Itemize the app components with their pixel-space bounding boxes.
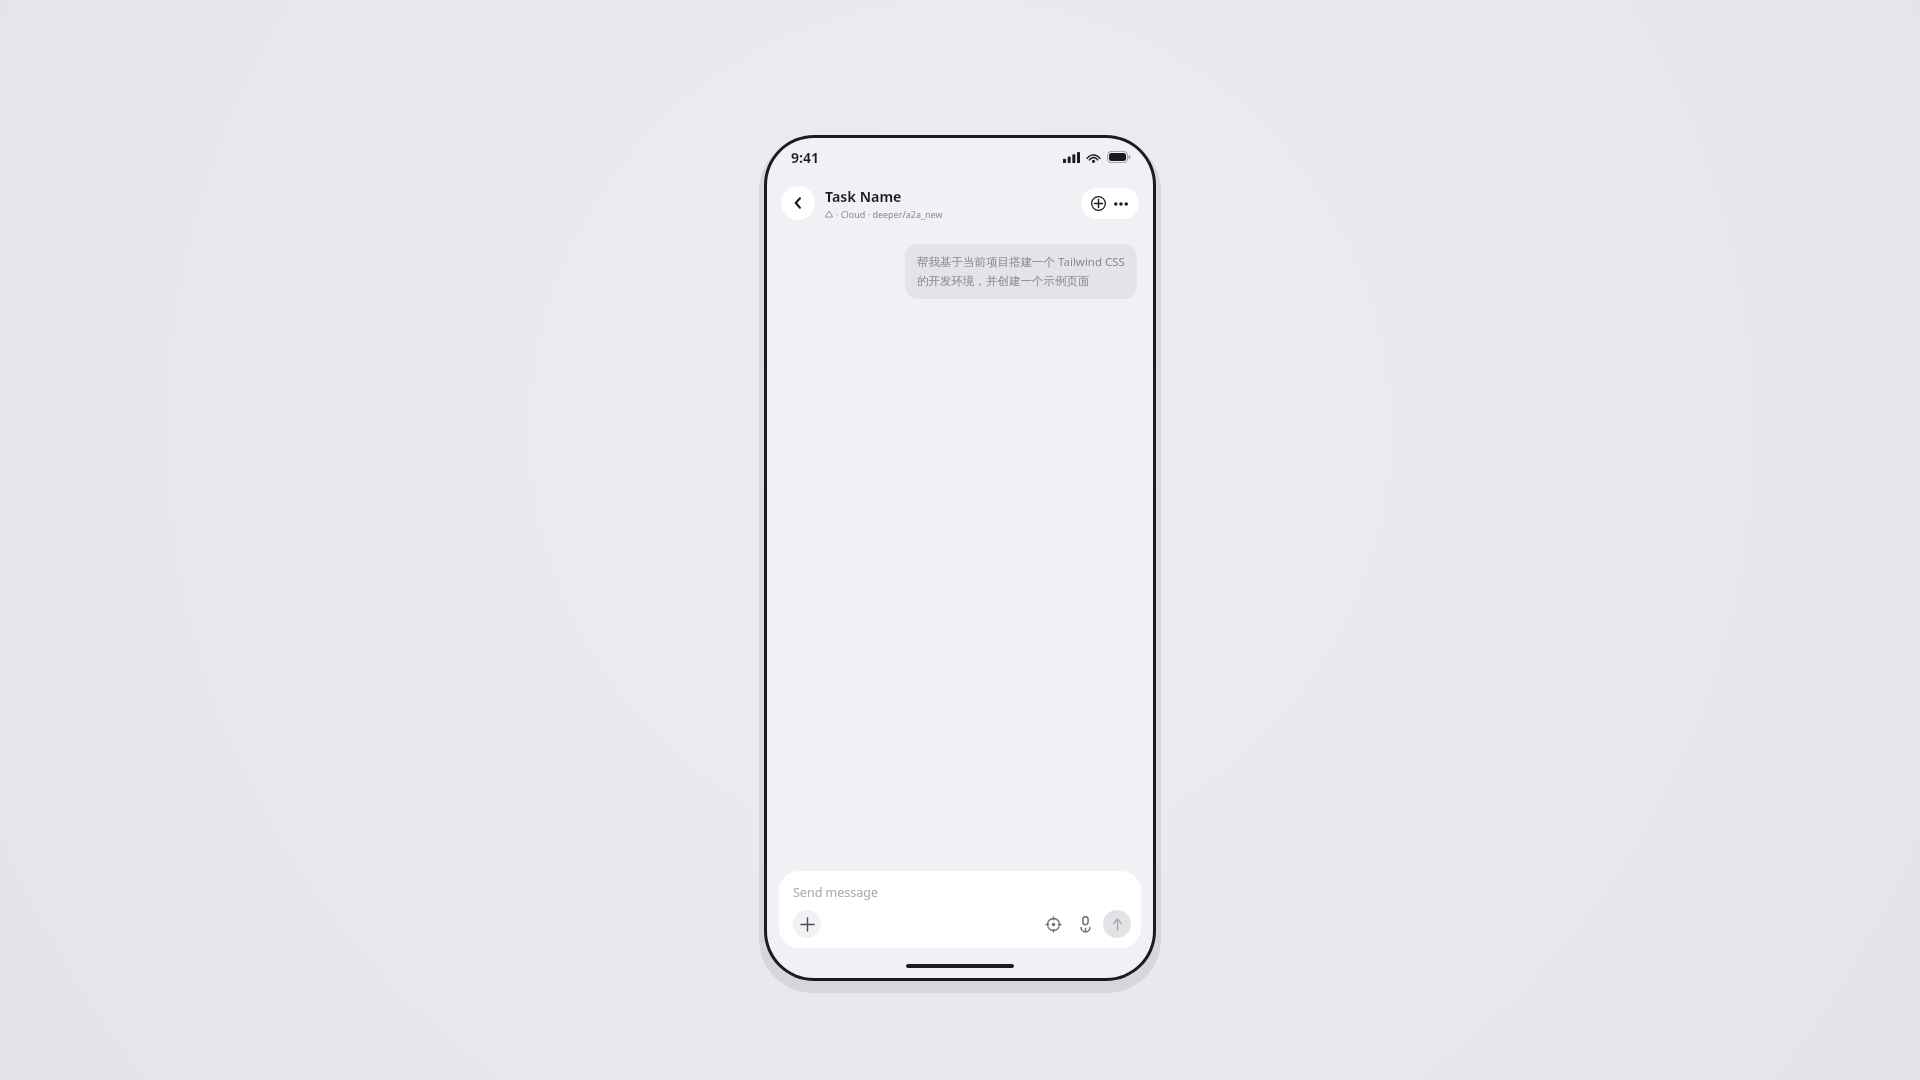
button[interactable]: Voice input: [1072, 911, 1098, 937]
button[interactable]: New: [1091, 188, 1106, 219]
button[interactable]: Add attachment: [793, 910, 821, 938]
button[interactable]: More options: [1114, 188, 1128, 219]
staticText: · Cloud · deeper/a2a_new: [836, 208, 943, 220]
button[interactable]: Send: [1103, 910, 1131, 938]
button[interactable]: Capture: [1040, 911, 1066, 937]
staticText: 帮我基于当前项目搭建一个 Tailwind CSS 的开发环境，并创建一个示例页…: [917, 254, 1125, 289]
button[interactable]: 帮我基于当前项目搭建一个 Tailwind CSS 的开发环境，并创建一个示例页…: [905, 244, 1137, 299]
staticText: 9:41: [791, 148, 819, 167]
button[interactable]: Send message: [779, 871, 1141, 948]
staticText: Send message: [793, 884, 879, 901]
staticText: Task Name: [825, 187, 902, 206]
button[interactable]: Back: [781, 186, 815, 220]
